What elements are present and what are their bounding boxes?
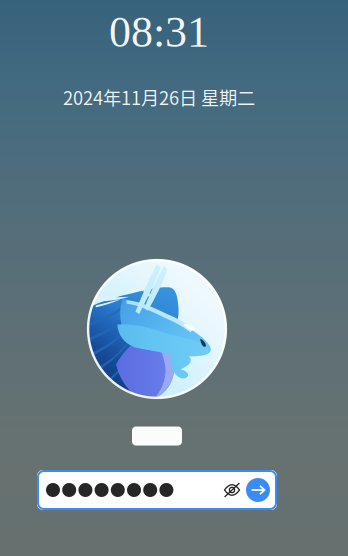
- staticText: 2024年11月26日 星期二: [63, 84, 255, 110]
- staticText: 08:31: [109, 8, 209, 56]
- button[interactable]: Unlock: [246, 478, 270, 502]
- button[interactable]: Show password: [218, 476, 246, 504]
